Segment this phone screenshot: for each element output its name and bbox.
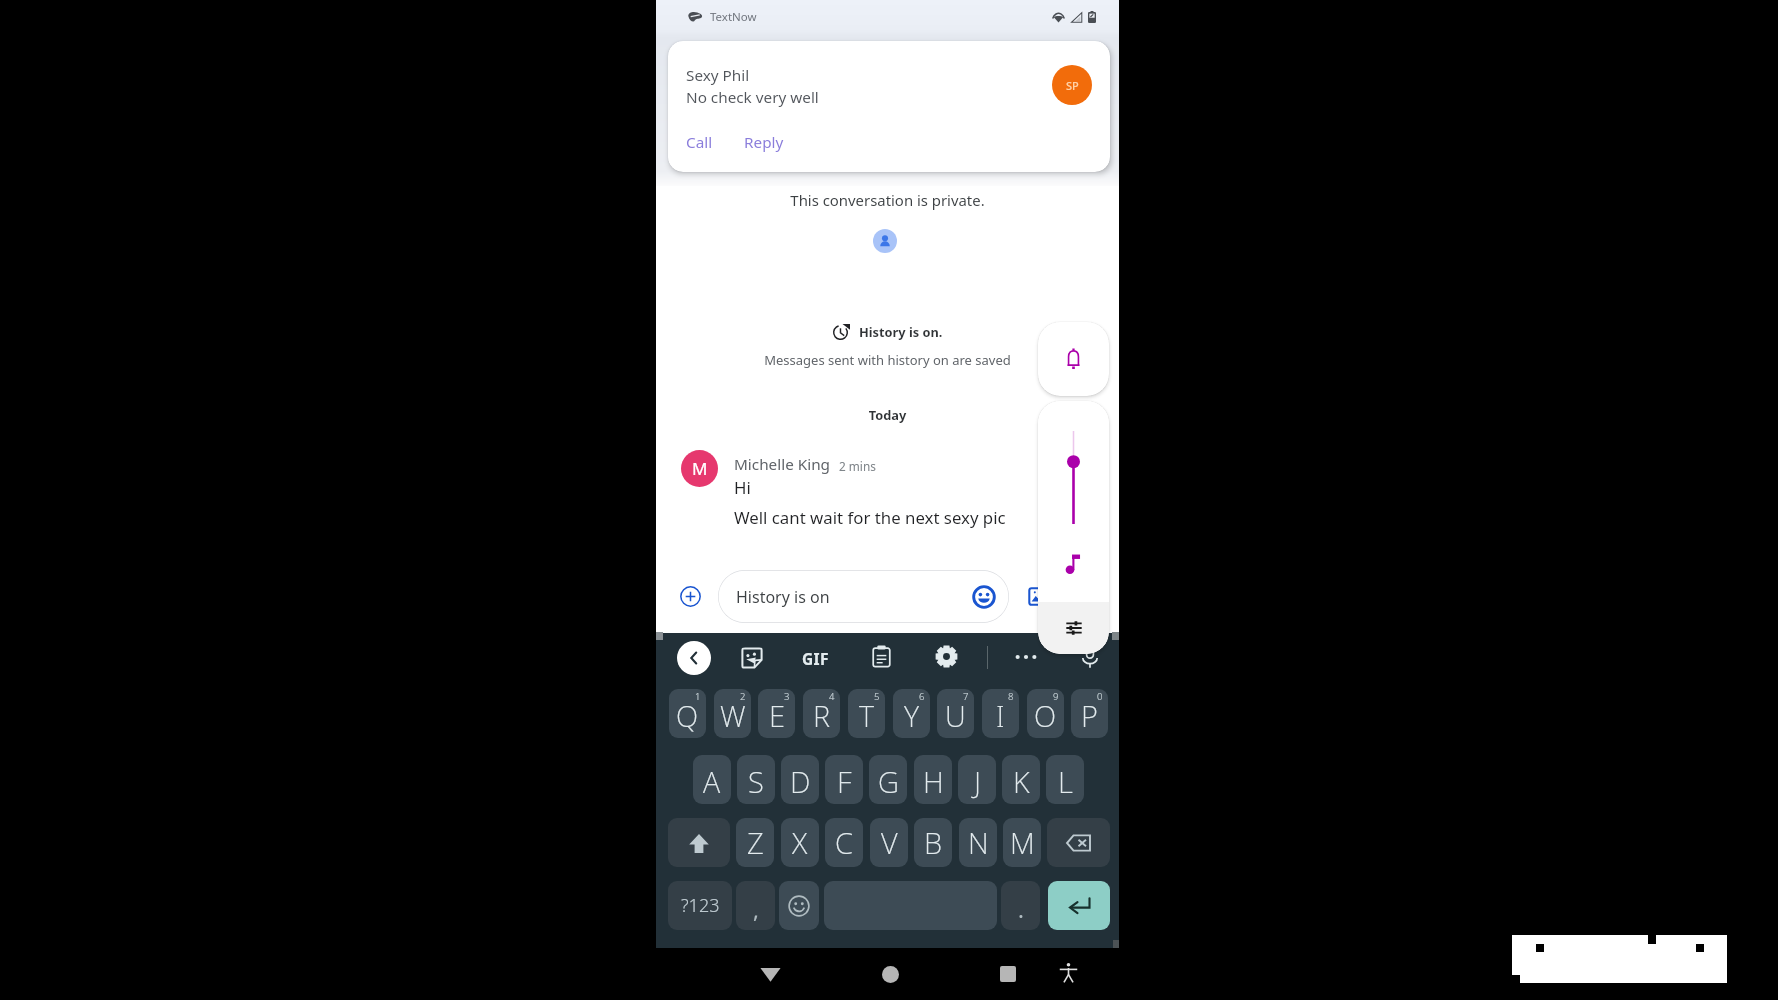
staticText: F (837, 762, 852, 801)
staticText: K (1013, 762, 1030, 801)
staticText: Today (656, 406, 1119, 423)
button[interactable]: Back (677, 641, 711, 675)
button[interactable]: Q (669, 689, 706, 738)
button[interactable]: . (1001, 881, 1040, 930)
button[interactable]: Reply (740, 130, 788, 155)
button[interactable]: Volume settings (1038, 602, 1109, 654)
button[interactable]: M (1003, 818, 1041, 867)
staticText: TextNow (710, 9, 757, 25)
staticText: Reply (744, 132, 784, 153)
staticText: W (720, 696, 746, 735)
button[interactable]: T (848, 689, 885, 738)
button[interactable]: N (959, 818, 997, 867)
staticText: T (859, 696, 874, 735)
button[interactable] (1048, 881, 1110, 930)
button[interactable]: K (1002, 755, 1040, 804)
staticText: This conversation is private. (656, 190, 1119, 210)
button[interactable]: O (1027, 689, 1064, 738)
staticText: Well cant wait for the next sexy pic (734, 506, 1006, 529)
button[interactable]: R (803, 689, 840, 738)
staticText: M (692, 457, 708, 480)
staticText: Michelle King (734, 454, 831, 475)
button[interactable]: B (914, 818, 952, 867)
staticText: M (1010, 823, 1035, 862)
button[interactable]: Voice input (1080, 645, 1100, 669)
staticText: 5 (874, 690, 880, 703)
button[interactable]: Stickers (740, 646, 764, 670)
staticText: Q (676, 696, 699, 735)
button[interactable]: ?123 (668, 881, 732, 930)
staticText: Y (904, 696, 919, 735)
staticText: G (878, 762, 899, 801)
staticText: History is on. (859, 323, 943, 340)
staticText: L (1058, 762, 1073, 801)
staticText: B (924, 823, 943, 862)
staticText: N (968, 823, 989, 862)
staticText: Sexy Phil (686, 65, 750, 86)
staticText: No check very well (686, 87, 819, 108)
staticText: . (1018, 894, 1024, 924)
button[interactable]: Send image (1027, 585, 1050, 608)
button[interactable]: W (714, 689, 751, 738)
staticText: R (813, 696, 830, 735)
staticText: V (881, 823, 898, 862)
staticText: 1 (695, 690, 701, 703)
staticText: History is on (736, 586, 830, 608)
button[interactable]: Sexy Phil (668, 41, 1110, 172)
button[interactable]: S (737, 755, 775, 804)
button[interactable]: X (781, 818, 819, 867)
button[interactable]: C (825, 818, 863, 867)
button[interactable]: Ring mode (1038, 322, 1109, 396)
staticText: Z (747, 823, 764, 862)
staticText: A (703, 762, 721, 801)
button[interactable]: J (958, 755, 996, 804)
staticText: 6 (919, 690, 925, 703)
button[interactable]: History is on (718, 570, 1009, 623)
button[interactable] (779, 881, 819, 930)
button[interactable]: Call (682, 130, 717, 155)
button[interactable]: Recent apps (992, 958, 1024, 990)
button[interactable]: D (781, 755, 819, 804)
staticText: 2 (740, 690, 746, 703)
button[interactable]: GIF (802, 648, 829, 669)
button[interactable]: E (758, 689, 795, 738)
button[interactable]: Settings (935, 645, 958, 668)
staticText: SP (1066, 78, 1079, 93)
button[interactable]: P (1071, 689, 1108, 738)
staticText: P (1081, 696, 1098, 735)
button[interactable]: More options (1015, 652, 1037, 662)
button[interactable] (668, 818, 730, 867)
staticText: D (790, 762, 811, 801)
staticText: 8 (1008, 690, 1014, 703)
staticText: , (753, 894, 759, 924)
staticText: U (945, 696, 966, 735)
button[interactable]: H (914, 755, 952, 804)
button[interactable]: A (693, 755, 731, 804)
button[interactable]: Accessibility (1052, 957, 1084, 989)
staticText: J (974, 762, 981, 801)
button[interactable]: Y (893, 689, 930, 738)
staticText: 0 (1097, 690, 1103, 703)
button[interactable]: Media volume (1038, 401, 1109, 602)
button[interactable]: Home (874, 958, 906, 990)
staticText: 2 mins (839, 458, 876, 474)
button[interactable] (1047, 818, 1110, 867)
staticText: 9 (1053, 690, 1059, 703)
button[interactable]: V (870, 818, 908, 867)
staticText: I (996, 696, 1005, 735)
button[interactable]: I (982, 689, 1019, 738)
staticText: 7 (963, 690, 969, 703)
button[interactable]: G (869, 755, 907, 804)
staticText: Hi (734, 476, 751, 499)
button[interactable]: Add attachment (674, 580, 707, 613)
button[interactable]: F (825, 755, 863, 804)
button[interactable]: Clipboard (870, 645, 893, 668)
button[interactable]: Z (736, 818, 774, 867)
button[interactable]: , (736, 881, 775, 930)
button[interactable]: L (1046, 755, 1084, 804)
button[interactable]: Hide keyboard (754, 958, 786, 990)
staticText: O (1034, 696, 1057, 735)
button[interactable]: U (937, 689, 974, 738)
staticText: 3 (784, 690, 790, 703)
